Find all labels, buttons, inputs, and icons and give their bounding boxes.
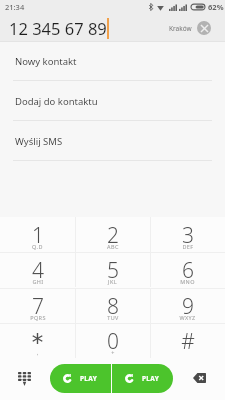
staticText: + [111, 349, 115, 356]
staticText: 9 [182, 292, 194, 321]
staticText: Q.D [32, 243, 43, 250]
staticText: 62% [208, 2, 224, 12]
button[interactable]: 1 [0, 217, 75, 252]
button[interactable]: PLAY [50, 364, 111, 393]
staticText: GHI [32, 278, 44, 285]
button[interactable]: 3 [150, 217, 225, 252]
button[interactable]: PLAY [112, 364, 173, 393]
staticText: 21:34 [5, 2, 25, 12]
staticText: ABC [107, 243, 119, 250]
button[interactable]: , [0, 323, 75, 358]
staticText: # [181, 327, 195, 356]
button[interactable]: 6 [150, 252, 225, 287]
staticText: 12 345 67 89 [9, 17, 107, 39]
staticText: 0 [107, 327, 119, 356]
button[interactable]: # [150, 323, 225, 358]
button[interactable]: Dialpad [12, 366, 37, 391]
staticText: Dodaj do kontaktu [15, 95, 98, 108]
button[interactable]: 9 [150, 288, 225, 323]
button[interactable]: 4 [0, 252, 75, 287]
staticText: MNO [180, 278, 195, 285]
button[interactable]: Wyślij SMS [0, 121, 225, 161]
staticText: PQRS [30, 314, 46, 321]
staticText: Nowy kontakt [15, 55, 77, 68]
button[interactable]: 7 [0, 288, 75, 323]
staticText: 3 [182, 221, 194, 250]
staticText: WXYZ [179, 314, 196, 321]
staticText: Kraków [169, 24, 192, 33]
button[interactable]: 8 [75, 288, 150, 323]
button[interactable]: 2 [75, 217, 150, 252]
staticText: 7 [32, 292, 44, 321]
staticText: 6 [182, 256, 194, 285]
button[interactable]: Nowy kontakt [0, 41, 225, 81]
staticText: 4 [32, 256, 44, 285]
staticText: 1 [32, 221, 44, 250]
button[interactable]: 0 [75, 323, 150, 358]
staticText: JKL [108, 278, 117, 285]
staticText: TUV [107, 314, 119, 321]
button[interactable]: 5 [75, 252, 150, 287]
button[interactable]: Backspace [186, 365, 212, 391]
staticText: 8 [107, 292, 119, 321]
staticText: DEF [182, 243, 194, 250]
staticText: 2 [107, 221, 119, 250]
button[interactable]: Dodaj do kontaktu [0, 81, 225, 121]
staticText: 5 [107, 256, 119, 285]
staticText: , [37, 349, 39, 356]
staticText: PLAY [80, 374, 98, 383]
staticText: Wyślij SMS [15, 135, 63, 148]
staticText: PLAY [142, 374, 160, 383]
button[interactable]: Clear number [197, 21, 211, 35]
